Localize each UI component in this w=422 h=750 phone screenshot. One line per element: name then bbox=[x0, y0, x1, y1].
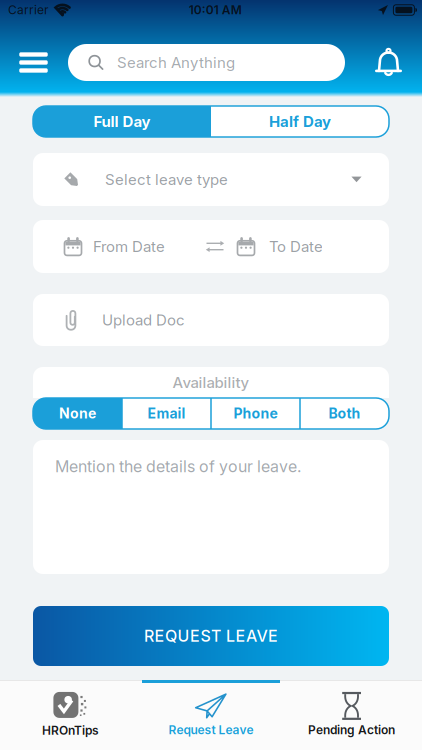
staticText: Both bbox=[328, 405, 360, 422]
button[interactable]: Email bbox=[122, 398, 211, 429]
staticText: Upload Doc bbox=[102, 311, 185, 329]
button[interactable]: To Date bbox=[237, 237, 367, 255]
button[interactable]: Half Day bbox=[211, 106, 389, 137]
staticText: From Date bbox=[93, 238, 165, 255]
button[interactable]: Phone bbox=[211, 398, 300, 429]
staticText: Carrier bbox=[8, 3, 49, 17]
staticText: 10:01 AM bbox=[189, 3, 242, 17]
button[interactable]: None bbox=[33, 398, 122, 429]
staticText: Phone bbox=[233, 405, 277, 422]
button[interactable]: Select leave type bbox=[33, 153, 389, 206]
staticText: Request Leave bbox=[168, 723, 253, 737]
staticText: Full Day bbox=[93, 113, 150, 130]
staticText: REQUEST LEAVE bbox=[144, 627, 278, 645]
staticText: Pending Action bbox=[308, 723, 395, 737]
button[interactable]: Both bbox=[300, 398, 389, 429]
button[interactable]: Full Day bbox=[33, 106, 211, 137]
staticText: Availability bbox=[172, 374, 249, 391]
staticText: Select leave type bbox=[105, 171, 228, 188]
button[interactable]: Notifications bbox=[375, 47, 402, 77]
button[interactable]: Request Leave bbox=[141, 691, 281, 738]
staticText: None bbox=[59, 405, 96, 422]
button[interactable]: Search bbox=[68, 44, 345, 81]
button[interactable]: Pending Action bbox=[281, 691, 422, 738]
staticText: HROnTips bbox=[42, 723, 99, 738]
button[interactable]: From Date bbox=[64, 237, 205, 255]
staticText: Email bbox=[147, 405, 185, 422]
staticText: Half Day bbox=[269, 113, 331, 130]
staticText: Mention the details of your leave. bbox=[55, 457, 301, 476]
button[interactable]: HROnTips bbox=[0, 691, 141, 738]
staticText: Search Anything bbox=[117, 54, 235, 71]
staticText: To Date bbox=[269, 238, 323, 255]
button[interactable]: REQUEST LEAVE bbox=[33, 606, 389, 666]
button[interactable]: Upload Doc bbox=[33, 294, 389, 346]
button[interactable]: Menu bbox=[19, 50, 48, 74]
